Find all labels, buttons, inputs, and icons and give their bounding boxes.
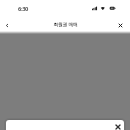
staticText: 6:30 — [18, 5, 28, 13]
button[interactable]: Back — [3, 21, 11, 29]
staticText: 회원권 매매 — [53, 21, 78, 27]
button[interactable]: Close — [116, 21, 124, 29]
button[interactable]: Close — [114, 123, 122, 130]
